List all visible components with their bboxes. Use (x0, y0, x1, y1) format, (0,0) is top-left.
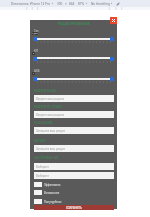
staticText: 844 (69, 2, 75, 6)
staticText: No throttling (91, 2, 110, 6)
button[interactable]: Выберите (34, 172, 114, 179)
button[interactable]: Запишите ваш раздел (34, 145, 114, 152)
button[interactable]: Введите имя раздела (34, 95, 114, 102)
staticText: ПОКАЗАНИЕ (34, 121, 53, 125)
staticText: ВЫБЕРИТЕ БАК (34, 89, 57, 93)
staticText: КП (34, 49, 39, 53)
staticText: НАСТРОЙКА СИС (34, 156, 60, 160)
staticText: Запишите ваш раздел (36, 129, 66, 133)
button[interactable]: СОХРАНИТЬ (34, 205, 114, 210)
staticText: Полутрубные (44, 200, 62, 204)
staticText: Вспомогате (44, 191, 60, 195)
button[interactable]: Вспомогате (34, 190, 114, 195)
staticText: × (65, 2, 67, 6)
staticText: ВЫБЕРИТЕ СТРАНУ (34, 105, 62, 109)
staticText: Введите имя раздела (36, 113, 65, 117)
staticText: СОХРАНИТЬ (66, 206, 82, 210)
staticText: Газ (34, 29, 39, 33)
staticText: Выберите (36, 165, 49, 169)
button[interactable]: Полутрубные (34, 199, 114, 204)
staticText: ▾ (86, 2, 88, 5)
staticText: Dimensions: iPhone 12 Pro (11, 2, 51, 6)
button[interactable]: Эффективно (34, 182, 114, 187)
staticText: Запишите ваш раздел (36, 147, 66, 151)
button[interactable]: Close (110, 17, 117, 24)
staticText: 87% (78, 2, 85, 6)
staticText: Эффективно (44, 183, 61, 187)
staticText: РЕДАКТИРОВАНИЕ (58, 21, 90, 25)
staticText: 6 (33, 52, 35, 55)
staticText: Выберите (36, 174, 49, 178)
staticText: АКБ (34, 69, 40, 73)
button[interactable]: Введите имя раздела (34, 111, 114, 118)
staticText: Введите имя раздела (36, 97, 65, 101)
staticText: 390 (57, 2, 63, 6)
button[interactable]: Запишите ваш раздел (34, 127, 114, 134)
staticText: 7 (33, 72, 35, 75)
staticText: АКТУАЛ (34, 139, 46, 143)
staticText: ▾ (52, 2, 54, 5)
staticText: 1 до 6 (32, 32, 38, 35)
button[interactable]: Выберите (34, 163, 114, 170)
staticText: ▾ (111, 2, 113, 5)
